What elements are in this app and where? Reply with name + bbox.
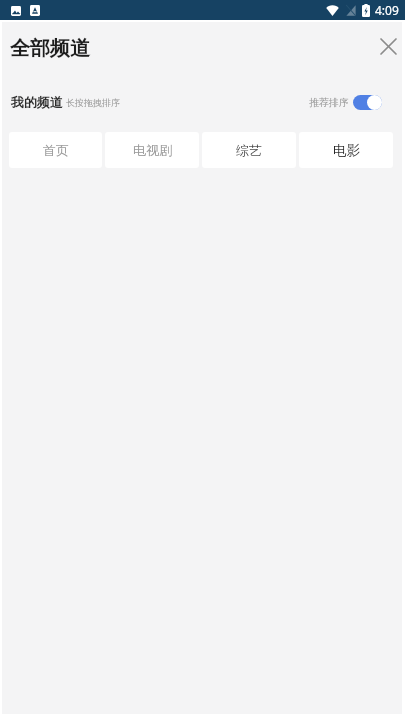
staticText: 综艺 — [236, 142, 262, 158]
staticText: 推荐排序 — [309, 96, 349, 109]
staticText: 电影 — [333, 142, 360, 159]
staticText: 电视剧 — [133, 142, 172, 158]
staticText: 4:09 — [375, 2, 399, 18]
button[interactable]: 首页 — [9, 132, 102, 168]
staticText: 首页 — [43, 142, 69, 158]
button[interactable]: 电视剧 — [105, 132, 199, 168]
button[interactable]: 电影 — [299, 132, 393, 168]
button[interactable]: Close — [368, 26, 405, 66]
button[interactable]: 综艺 — [202, 132, 296, 168]
staticText: 长按拖拽排序 — [66, 97, 120, 108]
button[interactable]: Recommended sorting toggle — [353, 94, 386, 110]
staticText: 全部频道 — [10, 36, 90, 61]
staticText: 我的频道 — [11, 94, 63, 110]
